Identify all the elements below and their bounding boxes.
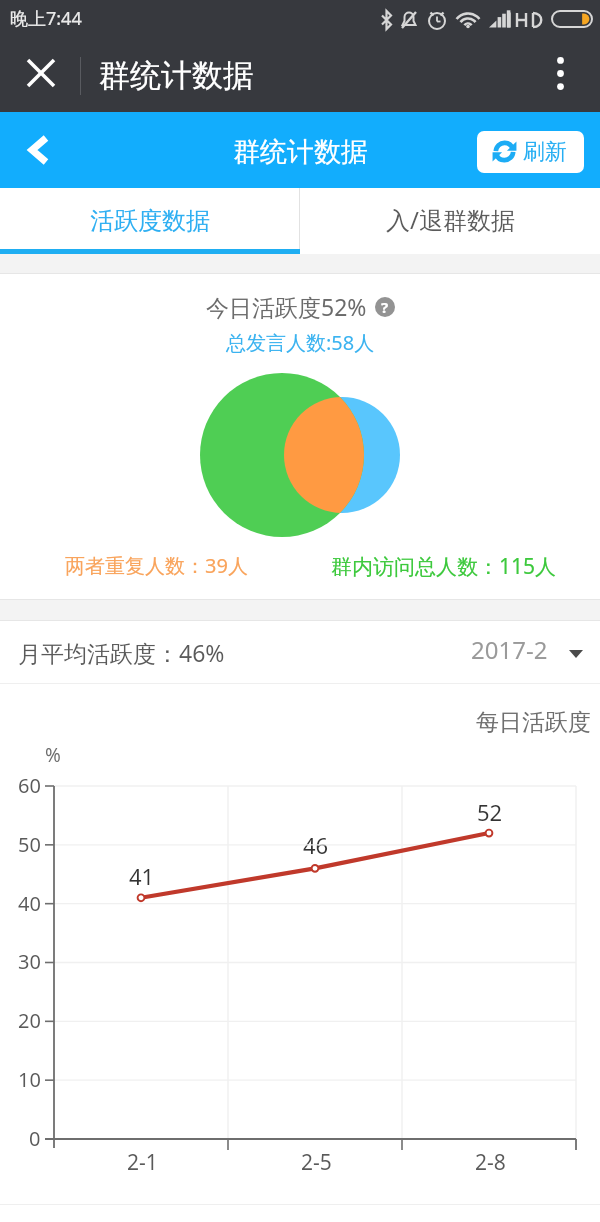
staticText: 群内访问总人数：115人 (331, 552, 557, 581)
staticText: 每日活跃度 (476, 708, 591, 737)
staticText: 今日活跃度52% (206, 291, 367, 322)
staticText: 40 (18, 890, 41, 917)
button[interactable]: Help (375, 297, 395, 317)
staticText: 群统计数据 (99, 56, 254, 95)
staticText: 入/退群数据 (386, 203, 515, 236)
staticText: 41 (129, 861, 155, 891)
staticText: 2017-2 (471, 633, 548, 666)
staticText: 群统计数据 (233, 135, 368, 169)
staticText: 52 (477, 797, 503, 827)
button[interactable]: 入/退群数据 (300, 188, 600, 249)
button[interactable]: 月平均活跃度：46% (0, 621, 600, 683)
button[interactable]: 刷新 (477, 131, 584, 173)
staticText: 60 (18, 772, 41, 799)
staticText: 50 (18, 831, 41, 858)
staticText: 46 (303, 830, 329, 860)
staticText: 2-1 (127, 1148, 158, 1177)
staticText: 0 (29, 1125, 41, 1152)
staticText: 月平均活跃度：46% (18, 637, 225, 668)
staticText: ? (381, 297, 389, 317)
staticText: 晚上7:44 (10, 6, 82, 31)
staticText: 两者重复人数：39人 (65, 552, 248, 579)
button[interactable]: Close (0, 40, 78, 112)
staticText: 30 (18, 948, 41, 975)
staticText: 20 (18, 1007, 41, 1034)
staticText: 10 (18, 1066, 41, 1093)
staticText: % (45, 742, 61, 768)
staticText: 2-5 (301, 1148, 332, 1177)
button[interactable]: More options (520, 40, 600, 112)
staticText: 刷新 (523, 138, 567, 166)
staticText: 2-8 (475, 1148, 506, 1177)
staticText: 活跃度数据 (90, 206, 210, 236)
staticText: 总发言人数:58人 (226, 329, 375, 356)
button[interactable]: Back (0, 112, 76, 188)
button[interactable]: 活跃度数据 (0, 188, 299, 249)
